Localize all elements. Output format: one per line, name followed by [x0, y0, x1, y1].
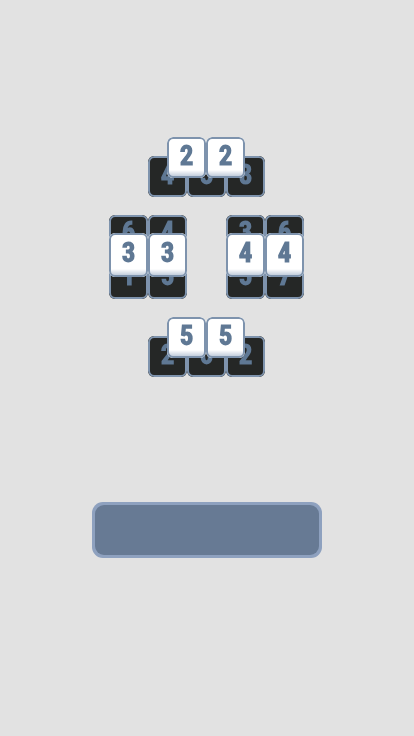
staticText: 3: [109, 237, 148, 269]
staticText: 5: [187, 159, 226, 191]
staticText: 6: [265, 216, 304, 248]
staticText: 4: [148, 159, 187, 191]
staticText: 4: [265, 237, 304, 269]
staticText: 3: [148, 237, 187, 269]
staticText: 7: [265, 260, 304, 292]
staticText: 4: [226, 237, 265, 269]
staticText: 1: [109, 260, 148, 292]
staticText: 5: [206, 320, 245, 352]
button[interactable]: Action: [95, 505, 319, 555]
staticText: 2: [167, 140, 206, 172]
staticText: 8: [226, 159, 265, 191]
staticText: 2: [206, 140, 245, 172]
staticText: 2: [226, 339, 265, 371]
staticText: 5: [148, 260, 187, 292]
staticText: 5: [167, 320, 206, 352]
staticText: 6: [109, 216, 148, 248]
staticText: 2: [148, 339, 187, 371]
staticText: 3: [226, 216, 265, 248]
staticText: 0: [187, 339, 226, 371]
staticText: 5: [226, 260, 265, 292]
staticText: 4: [148, 216, 187, 248]
